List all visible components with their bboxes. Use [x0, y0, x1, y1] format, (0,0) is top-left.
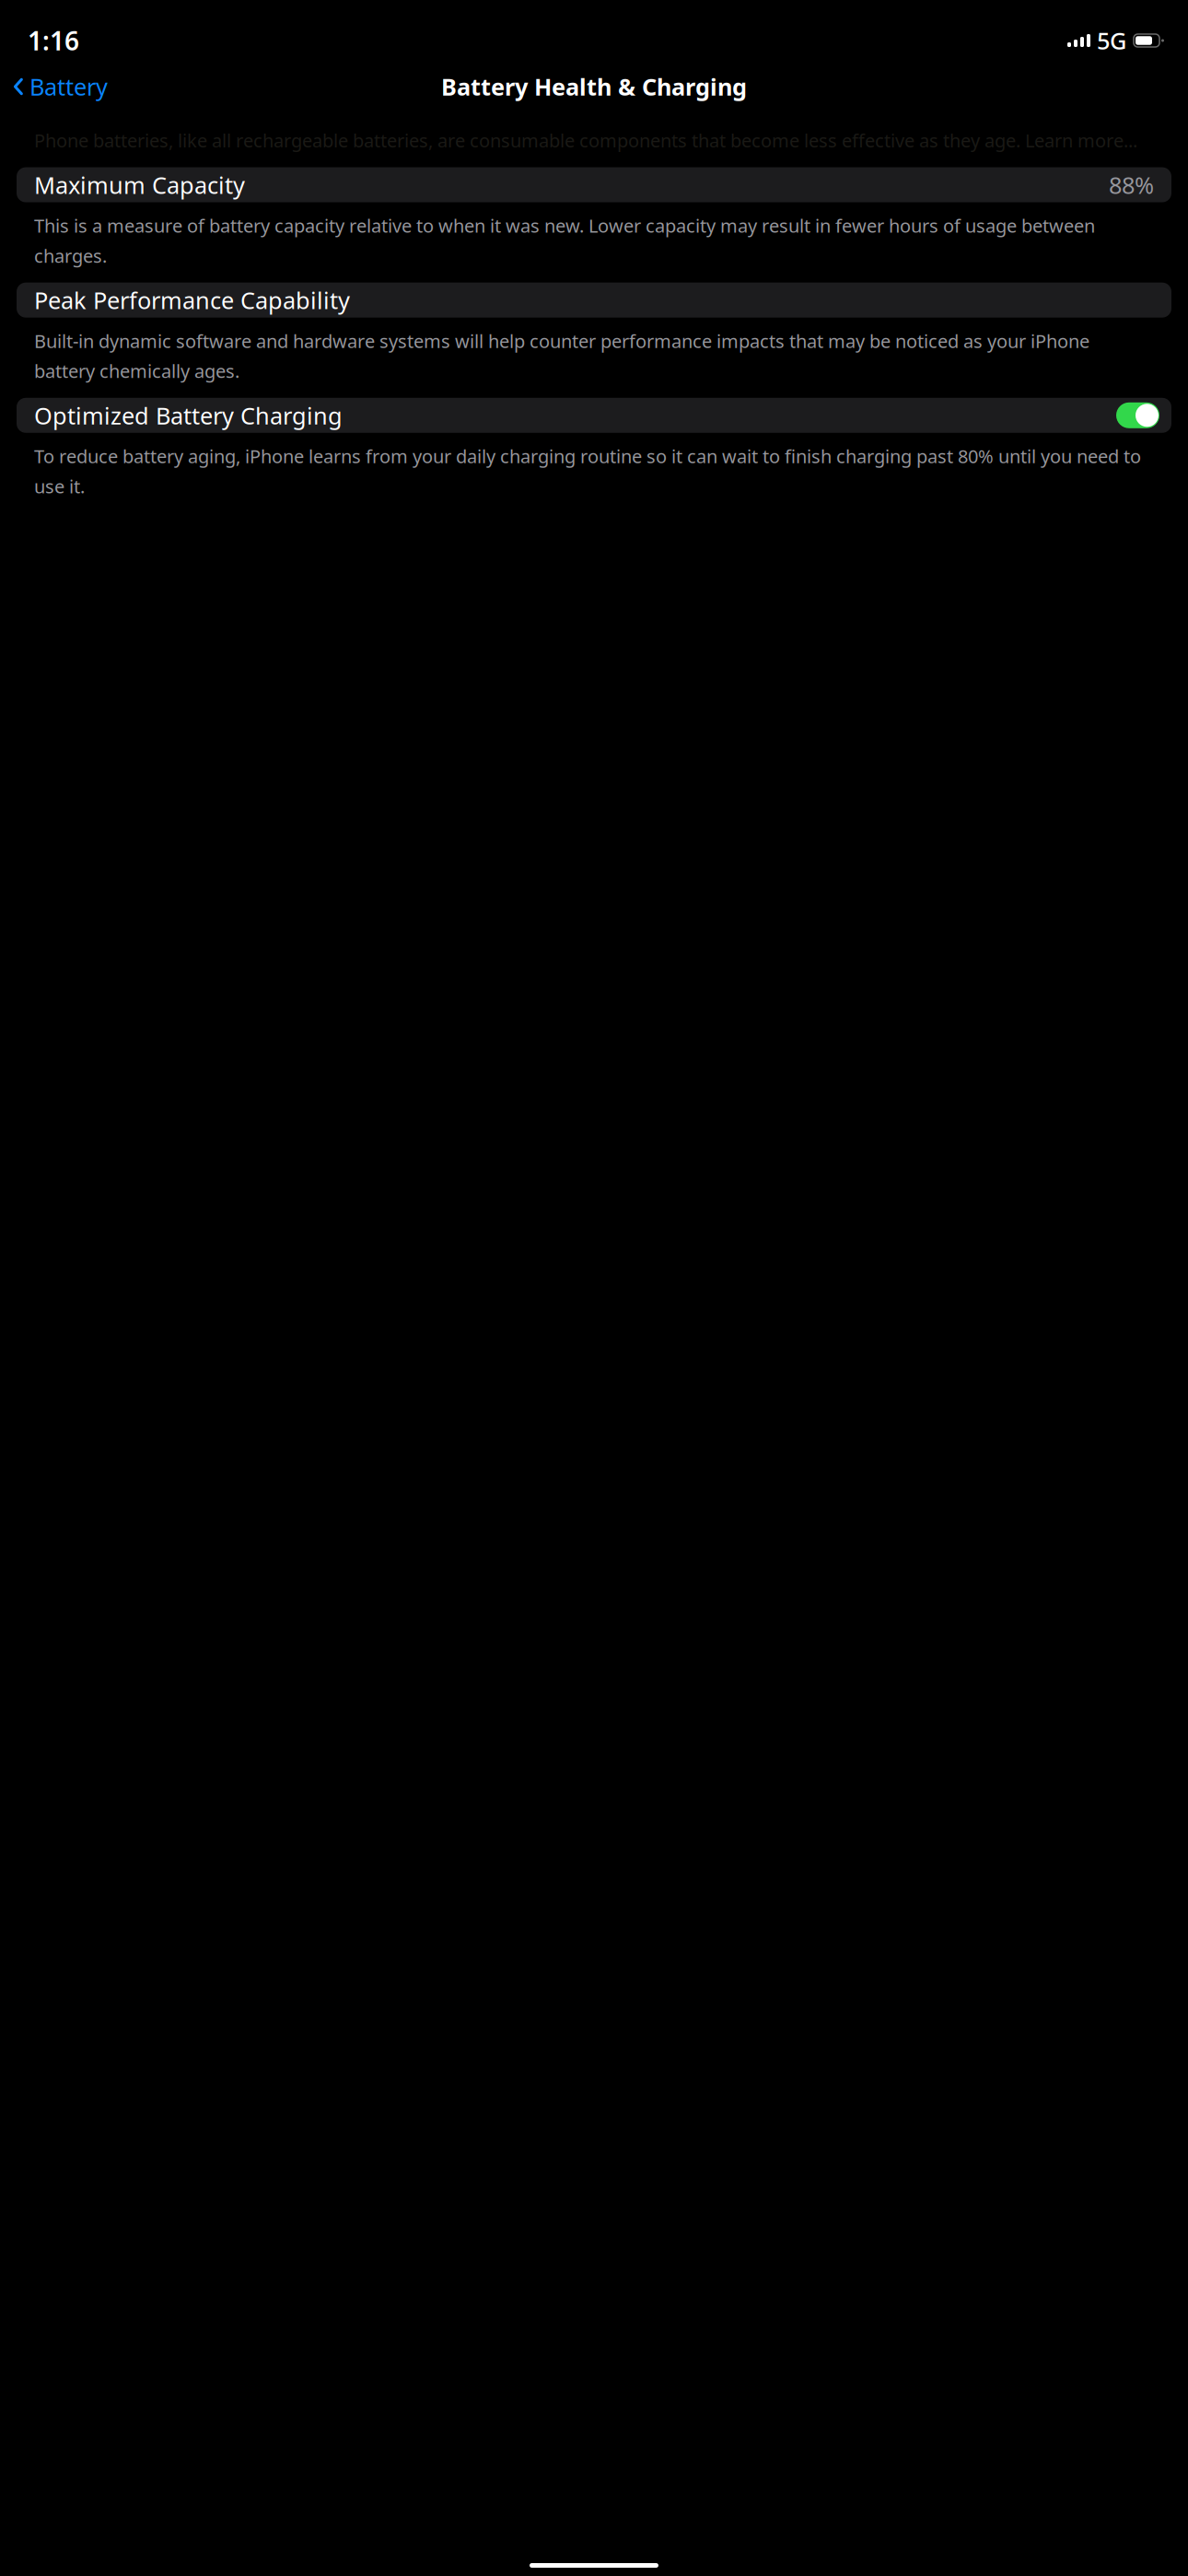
staticText: Optimized Battery Charging [34, 400, 343, 431]
staticText: Maximum Capacity [34, 169, 245, 200]
button[interactable]: Maximum Capacity [17, 167, 1171, 202]
staticText: Battery [29, 71, 108, 102]
staticText: This is a measure of battery capacity re… [34, 213, 1095, 268]
staticText: Phone batteries, like all rechargeable b… [34, 128, 1137, 153]
staticText: Built-in dynamic software and hardware s… [34, 329, 1089, 383]
staticText: 88% [1109, 169, 1154, 200]
staticText: 5G [1097, 25, 1126, 56]
staticText: Battery Health & Charging [441, 71, 747, 102]
button[interactable]: Optimized Battery Charging [17, 398, 1171, 433]
staticText: Peak Performance Capability [34, 285, 350, 316]
staticText: 1:16 [28, 23, 79, 58]
button[interactable]: Battery [0, 64, 108, 109]
button[interactable]: Peak Performance Capability [17, 283, 1171, 318]
staticText: To reduce battery aging, iPhone learns f… [34, 444, 1141, 498]
